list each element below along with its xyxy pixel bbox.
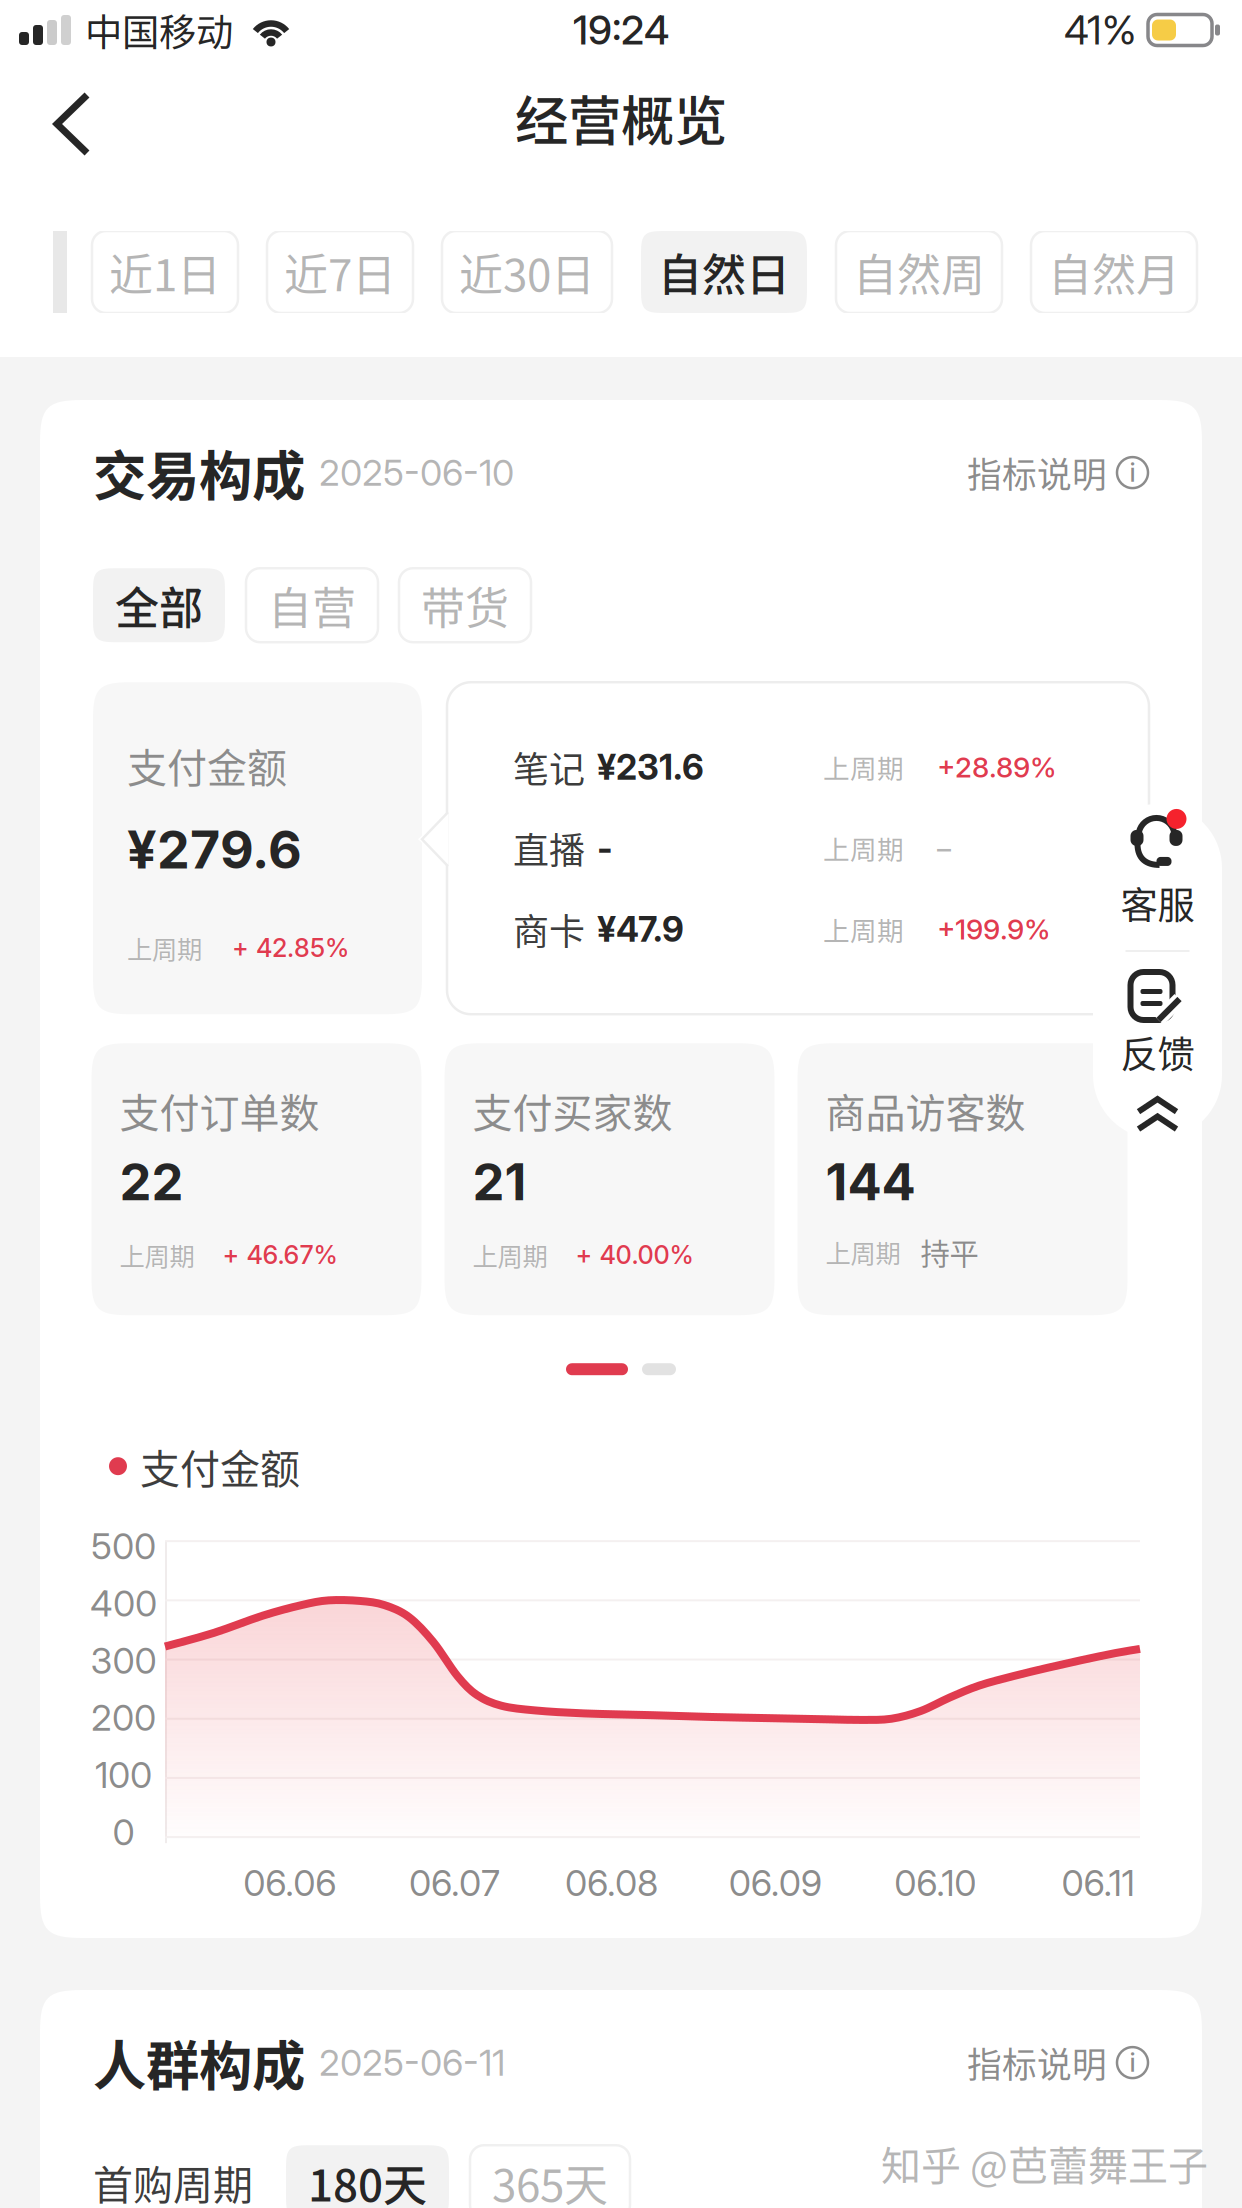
button[interactable]: 返回 — [0, 73, 127, 175]
staticText: 知乎 @芭蕾舞王子 — [881, 2134, 1208, 2192]
staticText: 06.10 — [894, 1861, 976, 1905]
staticText: - — [597, 827, 613, 869]
staticText: 上周期 — [823, 829, 904, 867]
staticText: 反馈 — [1120, 1025, 1194, 1079]
staticText: 上周期 — [825, 1234, 900, 1270]
staticText: 41% — [1064, 6, 1136, 54]
button[interactable]: 自然周 — [836, 231, 1002, 313]
staticText: 19:24 — [573, 6, 669, 54]
staticText: +28.89% — [937, 750, 1057, 784]
staticText: 近7日 — [284, 240, 396, 304]
staticText: 365天 — [492, 2150, 608, 2208]
staticText: 上周期 — [119, 1236, 194, 1273]
staticText: 自营 — [268, 573, 356, 637]
staticText: 近30日 — [459, 240, 595, 304]
staticText: 0 — [112, 1810, 134, 1854]
staticText: 400 — [90, 1582, 157, 1625]
staticText: ¥47.9 — [597, 908, 684, 950]
staticText: 06.08 — [565, 1861, 658, 1905]
staticText: 近1日 — [109, 240, 221, 304]
staticText: i — [1129, 457, 1135, 488]
staticText: 支付买家数 — [472, 1081, 672, 1139]
staticText: 人群构成 — [93, 2024, 305, 2101]
staticText: 持平 — [920, 1231, 978, 1273]
staticText: 上周期 — [823, 748, 904, 786]
staticText: +199.9% — [937, 912, 1051, 946]
staticText: 自然月 — [1048, 240, 1180, 304]
staticText: 100 — [95, 1753, 152, 1797]
staticText: 首购周期 — [93, 2153, 253, 2208]
button[interactable]: 全部 — [93, 568, 225, 642]
button[interactable]: 自然日 — [641, 231, 807, 313]
staticText: 06.07 — [409, 1861, 500, 1905]
staticText: + 42.85% — [232, 933, 349, 963]
staticText: + 46.67% — [222, 1240, 337, 1270]
staticText: 180天 — [308, 2150, 427, 2208]
staticText: 指标说明 — [967, 2037, 1107, 2088]
button[interactable]: 近30日 — [442, 231, 612, 313]
staticText: 500 — [91, 1524, 156, 1568]
button[interactable]: 180天 — [286, 2145, 449, 2208]
staticText: 2025-06-11 — [319, 2041, 505, 2084]
staticText: 交易构成 — [93, 434, 305, 511]
staticText: + 40.00% — [575, 1240, 693, 1270]
staticText: 带货 — [421, 573, 509, 637]
staticText: 06.09 — [729, 1861, 822, 1905]
staticText: 上周期 — [472, 1236, 547, 1273]
staticText: 笔记 — [513, 741, 585, 793]
staticText: ¥279.6 — [127, 818, 302, 881]
staticText: ¥231.6 — [597, 746, 704, 788]
button[interactable]: 反馈 — [1104, 952, 1210, 1083]
staticText: 全部 — [115, 573, 203, 637]
button[interactable]: 自营 — [246, 568, 378, 642]
staticText: 支付金额 — [140, 1437, 300, 1495]
staticText: 300 — [90, 1639, 156, 1682]
button[interactable]: 近1日 — [92, 231, 238, 313]
staticText: i — [1129, 2047, 1135, 2078]
staticText: 22 — [119, 1151, 183, 1212]
staticText: 2025-06-10 — [319, 451, 514, 494]
button[interactable]: 自然月 — [1031, 231, 1197, 313]
staticText: 06.06 — [243, 1861, 336, 1905]
staticText: 自然周 — [853, 240, 985, 304]
staticText: 中国移动 — [85, 3, 233, 57]
staticText: 上周期 — [823, 910, 904, 949]
staticText: 商卡 — [513, 903, 585, 955]
staticText: 上周期 — [127, 929, 202, 966]
button[interactable]: 365天 — [470, 2145, 630, 2208]
button[interactable]: 客服 — [1104, 792, 1210, 950]
button[interactable]: 带货 — [399, 568, 531, 642]
staticText: 商品访客数 — [825, 1081, 1025, 1139]
staticText: 支付金额 — [127, 736, 287, 794]
button[interactable]: 近7日 — [267, 231, 413, 313]
staticText: 21 — [472, 1151, 526, 1212]
button[interactable]: 指标说明 — [967, 2037, 1149, 2088]
staticText: 144 — [825, 1151, 915, 1212]
staticText: 客服 — [1120, 876, 1194, 930]
staticText: 指标说明 — [967, 447, 1107, 498]
staticText: 支付订单数 — [119, 1081, 319, 1139]
staticText: 06.11 — [1062, 1861, 1135, 1905]
staticText: 自然日 — [658, 240, 790, 304]
staticText: 经营概览 — [515, 79, 727, 156]
button[interactable]: 收起 — [1114, 1083, 1200, 1151]
staticText: – — [937, 831, 951, 865]
staticText: 200 — [91, 1696, 156, 1740]
staticText: 直播 — [513, 822, 585, 874]
button[interactable]: 指标说明 — [967, 447, 1149, 498]
